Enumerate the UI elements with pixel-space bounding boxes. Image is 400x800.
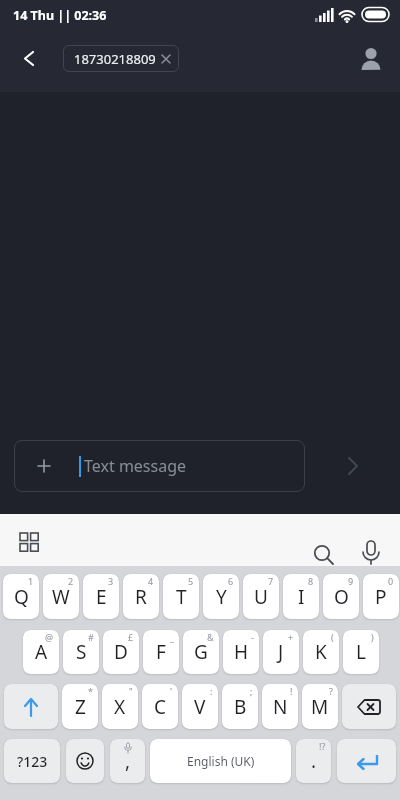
button[interactable]: ?123	[4, 739, 60, 783]
staticText: R	[135, 584, 147, 610]
staticText: K	[315, 639, 327, 665]
staticText: T	[176, 584, 187, 610]
button[interactable]: Z	[62, 684, 98, 729]
staticText: C	[154, 694, 167, 720]
staticText: 5	[188, 575, 194, 587]
button[interactable]: Y	[203, 574, 239, 619]
button[interactable]: W	[43, 574, 79, 619]
button[interactable]: E	[83, 574, 119, 619]
button[interactable]: A	[23, 630, 59, 674]
staticText: S	[76, 639, 87, 665]
staticText: H	[234, 639, 249, 665]
button[interactable]: Text message	[14, 440, 305, 492]
staticText: 1	[28, 575, 34, 587]
staticText: Y	[216, 584, 227, 610]
button[interactable]: .	[296, 739, 331, 783]
staticText: N	[273, 694, 288, 720]
button[interactable]	[308, 540, 338, 570]
button[interactable]	[4, 684, 58, 729]
staticText: ?	[329, 685, 333, 697]
staticText: ,	[125, 748, 131, 774]
button[interactable]: O	[323, 574, 359, 619]
staticText: Z	[75, 694, 86, 720]
staticText: 0	[388, 575, 394, 587]
staticText: L	[356, 639, 366, 665]
staticText: D	[114, 639, 128, 665]
staticText: W	[52, 584, 70, 610]
button[interactable]: P	[363, 574, 399, 619]
button[interactable]: J	[263, 630, 299, 674]
staticText: 8	[308, 575, 314, 587]
staticText: O	[334, 584, 349, 610]
staticText: *	[88, 685, 93, 697]
staticText: #	[88, 631, 94, 643]
button[interactable]: I	[283, 574, 319, 619]
button[interactable]: G	[183, 630, 219, 674]
staticText: &	[207, 631, 214, 643]
staticText: English (UK)	[187, 753, 255, 769]
button[interactable]	[335, 448, 371, 484]
staticText: F	[156, 639, 166, 665]
staticText: _	[170, 631, 174, 643]
staticText: X	[114, 694, 126, 720]
button[interactable]	[337, 739, 396, 783]
staticText: M	[311, 694, 329, 720]
staticText: G	[194, 639, 208, 665]
staticText: )	[371, 631, 374, 643]
staticText: '	[170, 685, 173, 697]
staticText: Q	[14, 584, 29, 610]
staticText: J	[278, 639, 284, 665]
staticText: 9	[348, 575, 354, 587]
button[interactable]: H	[223, 630, 259, 674]
button[interactable]: Q	[3, 574, 39, 619]
button[interactable]: F	[143, 630, 179, 674]
staticText: B	[234, 694, 247, 720]
button[interactable]: N	[262, 684, 298, 729]
staticText: 2	[68, 575, 74, 587]
staticText: @	[45, 631, 54, 643]
button[interactable]: U	[243, 574, 279, 619]
staticText: P	[375, 584, 387, 610]
staticText: !	[290, 685, 293, 697]
button[interactable]: M	[302, 684, 338, 729]
button[interactable]: 18730218809	[63, 45, 179, 72]
staticText: :	[210, 685, 213, 697]
button[interactable]	[356, 540, 386, 570]
button[interactable]: ,	[110, 739, 145, 783]
staticText: -	[251, 631, 254, 643]
staticText: A	[35, 639, 48, 665]
staticText: 18730218809	[74, 50, 156, 68]
button[interactable]	[356, 44, 386, 74]
staticText: (	[331, 631, 334, 643]
button[interactable]: R	[123, 574, 159, 619]
staticText: "	[129, 685, 133, 697]
staticText: 3	[108, 575, 114, 587]
button[interactable]: X	[102, 684, 138, 729]
staticText: ?123	[17, 752, 48, 771]
staticText: 4	[148, 575, 154, 587]
staticText: .	[311, 748, 317, 774]
staticText: !?	[319, 740, 326, 752]
staticText: E	[96, 584, 107, 610]
button[interactable]: B	[222, 684, 258, 729]
button[interactable]: K	[303, 630, 339, 674]
staticText: 7	[268, 575, 274, 587]
staticText: 6	[228, 575, 234, 587]
staticText: 14 Thu || 02:36	[13, 7, 107, 24]
button[interactable]: C	[142, 684, 178, 729]
staticText: Text message	[84, 455, 187, 477]
button[interactable]: T	[163, 574, 199, 619]
staticText: U	[254, 584, 268, 610]
button[interactable]	[12, 532, 40, 560]
button[interactable]	[15, 44, 43, 72]
staticText: ;	[250, 685, 253, 697]
button[interactable]: L	[343, 630, 379, 674]
button[interactable]	[342, 684, 396, 729]
button[interactable]: V	[182, 684, 218, 729]
button[interactable]: S	[63, 630, 99, 674]
button[interactable]: D	[103, 630, 139, 674]
staticText: I	[298, 584, 305, 610]
button[interactable]	[66, 739, 104, 783]
staticText: V	[194, 694, 206, 720]
button[interactable]: English (UK)	[150, 739, 291, 783]
